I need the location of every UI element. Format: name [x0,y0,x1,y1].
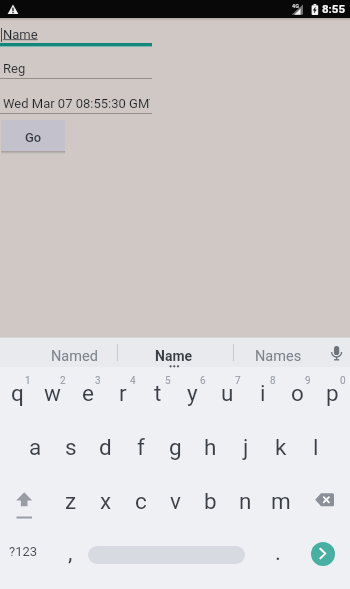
staticText: 6 [200,375,206,387]
staticText: Named [51,348,98,365]
button[interactable]: x [88,474,123,528]
button[interactable]: b [193,474,228,528]
staticText: Reg [3,61,26,76]
button[interactable]: i [245,366,280,420]
staticText: , [68,539,73,565]
staticText: l [313,434,319,460]
button[interactable]: r [105,366,140,420]
staticText: 8:55 [322,2,346,15]
staticText: i [260,380,266,406]
staticText: d [99,434,112,460]
button[interactable]: Go [1,120,65,151]
button[interactable] [311,542,335,566]
button[interactable]: t [140,366,175,420]
staticText: 0 [340,375,346,387]
button[interactable]: l [298,420,333,474]
button[interactable]: z [53,474,88,528]
staticText: j [243,434,249,460]
button[interactable]: , [53,525,88,579]
staticText: 9 [305,375,311,387]
staticText: Go [25,130,42,145]
staticText: z [65,488,77,514]
staticText: u [221,380,234,406]
staticText: 4 [130,375,136,387]
staticText: 3 [95,375,101,387]
button[interactable]: c [123,474,158,528]
button[interactable]: w [35,366,70,420]
button[interactable]: f [123,420,158,474]
staticText: n [239,488,252,514]
button[interactable]: m [263,474,298,528]
staticText: 8 [270,375,276,387]
staticText: r [119,380,127,406]
button[interactable]: Named [0,337,350,589]
staticText: b [204,488,217,514]
staticText: Names [255,348,302,365]
staticText: m [271,488,291,514]
staticText: c [135,488,147,514]
staticText: 2 [60,375,66,387]
staticText: g [169,434,182,460]
button[interactable]: y [175,366,210,420]
button[interactable]: s [53,420,88,474]
button[interactable]: q [0,366,35,420]
button[interactable]: n [228,474,263,528]
staticText: w [44,380,61,406]
staticText: Name [155,348,193,364]
staticText: ?123 [9,544,38,559]
staticText: a [29,434,42,460]
button[interactable]: j [228,420,263,474]
button[interactable]: u [210,366,245,420]
button[interactable]: o [280,366,315,420]
staticText: s [65,434,77,460]
staticText: f [137,434,145,460]
button[interactable]: p [315,366,350,420]
staticText: k [275,434,287,460]
staticText: x [100,488,112,514]
button[interactable]: a [18,420,53,474]
button[interactable] [88,546,245,564]
staticText: y [187,380,198,406]
staticText: 4G [292,3,299,9]
staticText: q [11,380,24,406]
staticText: v [170,488,181,514]
button[interactable]: e [70,366,105,420]
button[interactable]: h [193,420,228,474]
button[interactable]: g [158,420,193,474]
staticText: 7 [235,375,241,387]
staticText: t [154,380,162,406]
staticText: 1 [25,375,31,387]
button[interactable]: d [88,420,123,474]
button[interactable]: k [263,420,298,474]
staticText: Name [3,27,38,42]
staticText: p [326,380,339,406]
staticText: Wed Mar 07 08:55:30 GMT [3,96,150,111]
staticText: . [275,539,281,565]
staticText: e [82,380,94,406]
staticText: 5 [165,375,171,387]
button[interactable]: v [158,474,193,528]
staticText: o [291,380,304,406]
button[interactable]: . [260,525,295,579]
staticText: h [204,434,217,460]
